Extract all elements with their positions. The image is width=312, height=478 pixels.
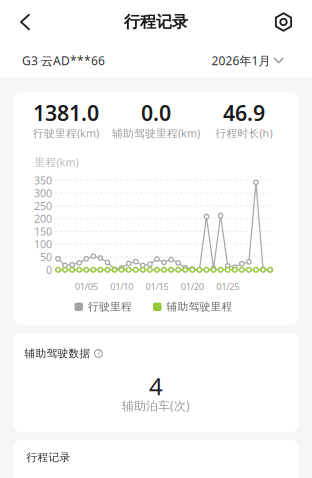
staticText: 250 — [34, 199, 52, 213]
button[interactable]: 设置 — [273, 11, 312, 33]
staticText: 200 — [34, 212, 52, 226]
button[interactable]: 2026年1月 — [211, 52, 283, 68]
staticText: 行程记录 — [26, 451, 70, 464]
staticText: 01/10 — [110, 280, 133, 293]
staticText: 50 — [40, 250, 52, 264]
staticText: 辅助驾驶数据 — [24, 347, 90, 360]
button[interactable]: 返回 — [0, 15, 29, 29]
staticText: 0.0 — [141, 98, 171, 127]
staticText: 4 — [149, 370, 163, 402]
staticText: 01/05 — [75, 280, 98, 293]
staticText: 1381.0 — [33, 98, 99, 127]
staticText: 300 — [34, 186, 52, 200]
staticText: 2026年1月 — [211, 52, 270, 68]
staticText: 行程时长(h) — [215, 126, 272, 140]
staticText: 辅助泊车(次) — [122, 397, 190, 413]
staticText: 行驶里程 — [88, 300, 132, 313]
staticText: 01/25 — [216, 280, 239, 293]
staticText: 里程(km) — [34, 155, 78, 169]
staticText: 100 — [34, 237, 52, 251]
staticText: 150 — [34, 224, 52, 238]
staticText: 0 — [46, 263, 52, 277]
staticText: ? — [97, 348, 100, 359]
staticText: 01/15 — [145, 280, 168, 293]
staticText: 01/20 — [181, 280, 204, 293]
staticText: 350 — [34, 173, 52, 187]
staticText: 46.9 — [223, 98, 265, 127]
staticText: 辅助驾驶里程(km) — [112, 126, 200, 140]
staticText: 辅助驾驶里程 — [166, 300, 232, 313]
staticText: 行程记录 — [124, 12, 188, 32]
button[interactable]: 辅助驾驶数据说明 — [94, 348, 102, 359]
staticText: 行驶里程(km) — [33, 126, 99, 140]
staticText: G3 云AD***66 — [22, 52, 105, 68]
